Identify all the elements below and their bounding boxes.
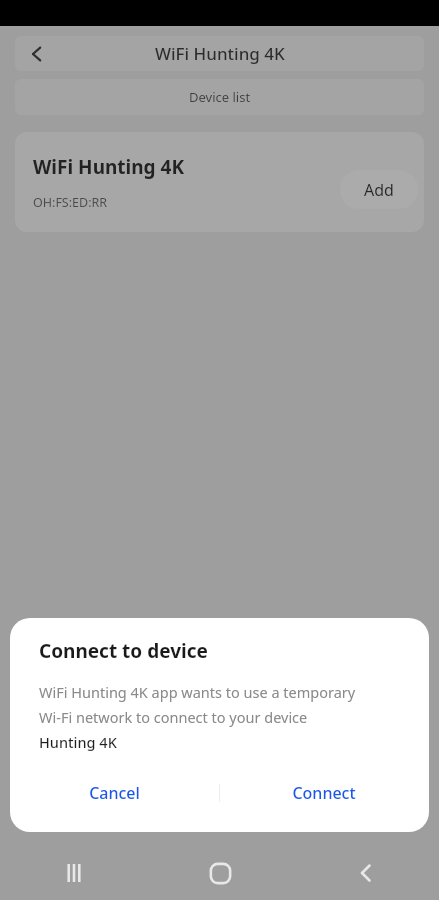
staticText: WiFi Hunting 4K app wants to use a tempo… (39, 682, 356, 702)
button[interactable]: Back (293, 846, 439, 900)
staticText: WiFi Hunting 4K (155, 42, 285, 65)
button[interactable]: Back (15, 36, 59, 71)
staticText: Wi-Fi network to connect to your device (39, 707, 308, 727)
button[interactable]: Device list (15, 79, 424, 115)
staticText: Device list (189, 88, 251, 106)
staticText: Cancel (89, 782, 140, 804)
button[interactable]: WiFi Hunting 4K (15, 132, 424, 232)
button[interactable]: Add (340, 170, 418, 209)
button[interactable]: Home (147, 846, 293, 900)
staticText: OH:FS:ED:RR (33, 194, 108, 211)
button[interactable]: Recents (0, 846, 147, 900)
button[interactable]: Cancel (10, 764, 219, 822)
staticText: WiFi Hunting 4K (33, 154, 185, 180)
staticText: Hunting 4K (39, 732, 117, 752)
staticText: Connect (292, 782, 356, 804)
staticText: Connect to device (39, 638, 208, 664)
staticText: Add (364, 179, 394, 201)
button[interactable]: Connect (219, 764, 429, 822)
